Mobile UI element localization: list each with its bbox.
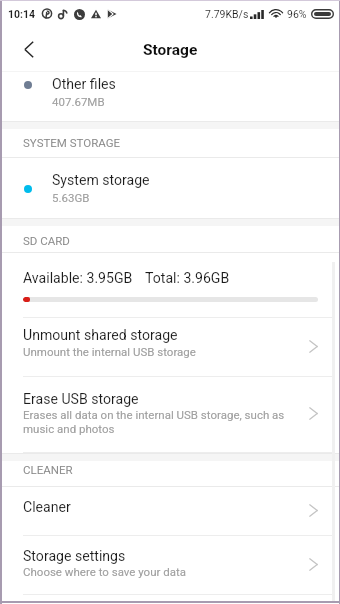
staticText: System storage [52,172,150,189]
button[interactable]: Back [10,34,40,64]
staticText: 10:14 [8,8,36,20]
button[interactable]: Cleaner [0,487,340,535]
staticText: Available: 3.95GB [23,270,133,287]
button[interactable]: Available: 3.95GB [0,253,340,317]
staticText: 7.79KB/s [205,8,249,20]
staticText: Storage [143,41,198,59]
button[interactable]: Storage settings [0,536,340,594]
staticText: Storage settings [23,548,126,565]
staticText: Unmount shared storage [23,327,178,344]
button[interactable]: Unmount shared storage [0,318,340,376]
staticText: CLEANER [23,463,73,476]
staticText: Erase USB storage [23,391,139,408]
staticText: 96% [287,8,307,20]
staticText: Other files [52,76,116,93]
staticText: Total: 3.96GB [145,270,230,287]
staticText: SYSTEM STORAGE [23,136,121,149]
button[interactable]: Erase USB storage [0,377,340,452]
button[interactable]: Other files [0,72,340,121]
staticText: 5.63GB [52,191,90,204]
staticText: SD CARD [23,234,70,247]
staticText: Cleaner [23,499,71,516]
staticText: 407.67MB [52,95,105,108]
staticText: Erases all data on the internal USB stor… [23,408,285,421]
staticText: music and photos [23,422,115,435]
button[interactable]: System storage [0,158,340,218]
staticText: Unmount the internal USB storage [23,345,196,358]
staticText: Choose where to save your data [23,565,187,578]
